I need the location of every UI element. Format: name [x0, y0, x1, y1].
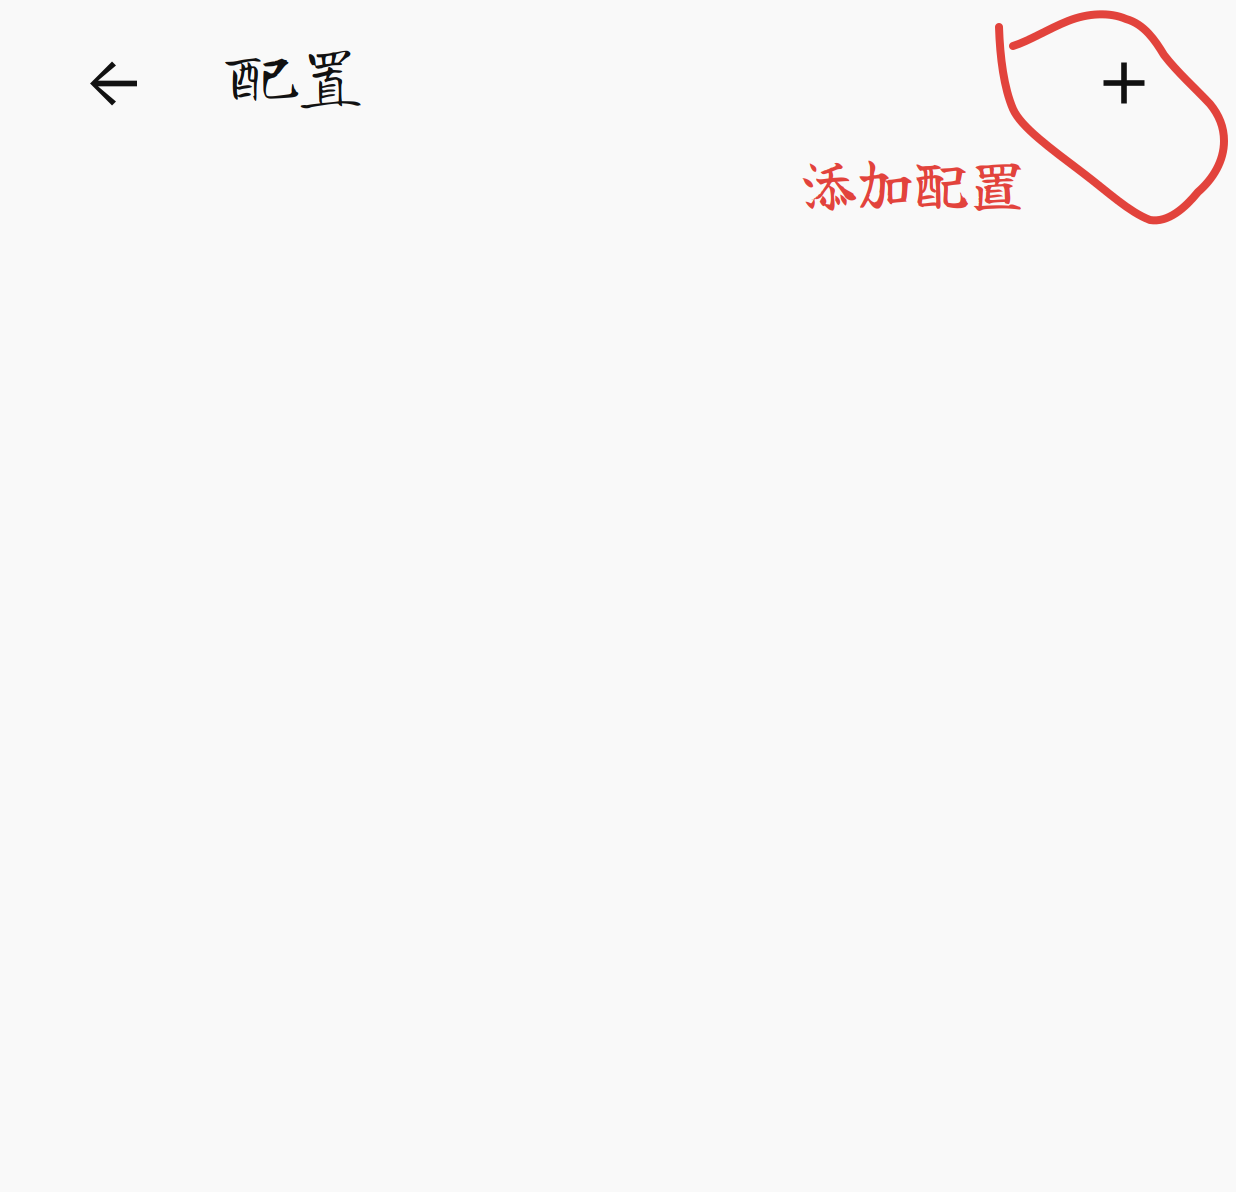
- button[interactable]: 返回: [49, 18, 181, 150]
- staticText: 配置: [227, 39, 365, 109]
- staticText: 添加配置: [801, 141, 1025, 223]
- button[interactable]: 添加配置: [1058, 17, 1190, 149]
